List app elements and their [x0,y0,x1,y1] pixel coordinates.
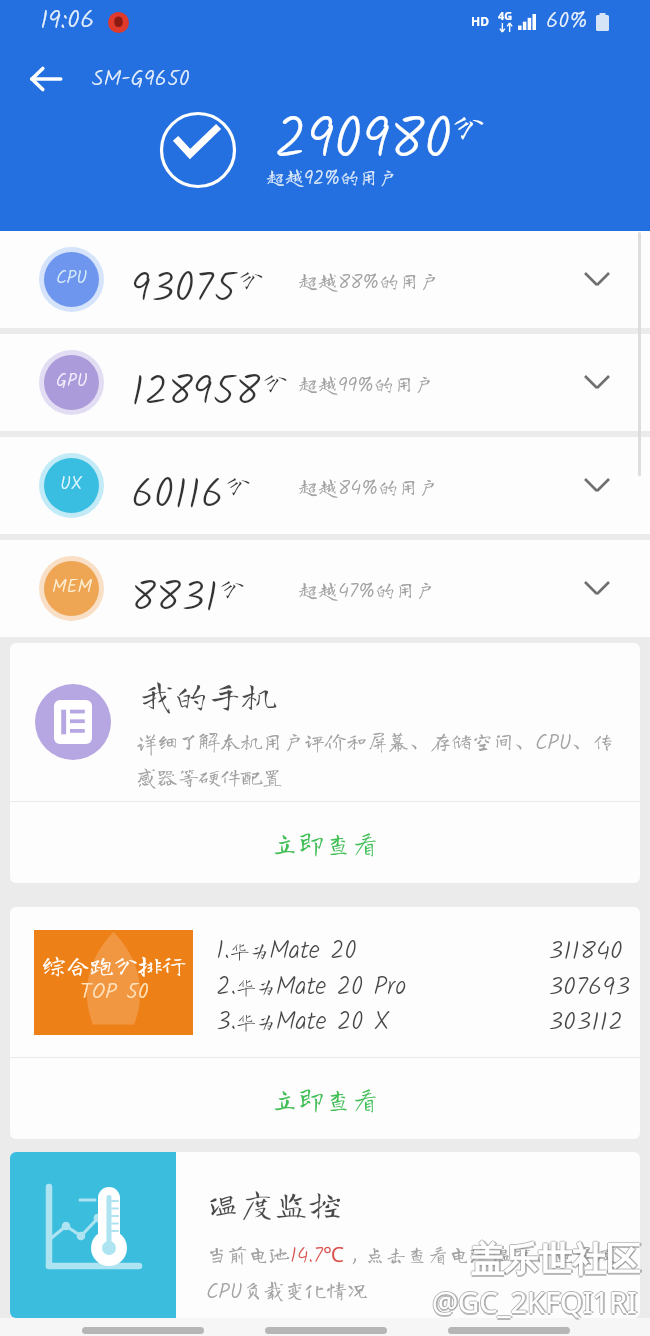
staticText: 3.华为Mate 20 X [216,1002,390,1042]
staticText: MEM [52,573,92,602]
staticText: 超越88%的用户 [298,267,440,299]
staticText: 超越92%的用户 [266,164,397,194]
staticText: 详细了解本机用户评价和屏幕、存储空间、CPU、传感器等硬件配置 [136,727,628,787]
staticText: 290980 [274,96,453,187]
button[interactable]: 温度监控 [10,1152,640,1318]
staticText: 盖乐世社区 [469,1238,639,1281]
staticText: 立即查看 [271,829,379,856]
staticText: TOP 50 [80,975,149,1010]
staticText: 128958 [131,360,261,425]
staticText: 温度监控 [206,1186,342,1220]
staticText: 19:06 [40,0,95,41]
staticText: 311840 [548,931,623,972]
staticText: UX [60,470,83,499]
button[interactable]: Back [20,53,72,105]
staticText: 分 [220,576,246,601]
staticText: 盖乐世社区 [470,1240,640,1283]
button[interactable] [265,1327,387,1334]
staticText: 分 [226,473,252,498]
staticText: 超越99%的用户 [298,370,434,402]
staticText: @GC_2KFQI1RI [432,1282,637,1321]
staticText: 我的手机 [140,678,276,712]
button[interactable] [448,1327,570,1334]
staticText: HD [471,13,489,29]
button[interactable]: 立即查看 [10,1058,640,1139]
staticText: 93075 [131,257,237,322]
staticText: GPU [56,367,88,396]
staticText: 1.华为Mate 20 [216,931,357,971]
button[interactable]: CPU [0,231,650,328]
staticText: @GC_2KFQI1RI [432,1281,637,1320]
staticText: 盖乐世社区 [470,1238,640,1281]
staticText: 超越47%的用户 [298,576,435,608]
staticText: 当前电池14.7℃，点击查看电池温度、电量及CPU负载变化情况 [206,1240,636,1309]
button[interactable]: MEM [0,540,650,637]
staticText: 综合跑分排行 [42,953,186,977]
button[interactable]: UX [0,437,650,534]
staticText: 60116 [131,463,224,528]
button[interactable]: 我的手机 [10,643,640,801]
staticText: 分 [263,370,289,395]
staticText: 8831 [131,566,218,631]
staticText: @GC_2KFQI1RI [432,1284,637,1323]
staticText: 盖乐世社区 [472,1238,642,1281]
staticText: 60% [546,4,588,39]
button[interactable]: GPU [0,334,650,431]
staticText: 4G [498,8,513,23]
staticText: 307693 [548,967,631,1008]
staticText: CPU [56,264,88,293]
staticText: 超越84%的用户 [298,473,438,505]
staticText: 303112 [548,1002,623,1043]
staticText: 分 [239,267,265,292]
staticText: 2.华为Mate 20 Pro [216,967,407,1007]
staticText: SM-G9650 [92,62,190,97]
staticText: 盖乐世社区 [470,1237,640,1280]
staticText: 分 [453,110,486,142]
staticText: 立即查看 [271,1085,379,1112]
button[interactable]: 综合跑分排行 [10,907,640,1057]
button[interactable] [82,1327,204,1334]
staticText: @GC_2KFQI1RI [431,1282,636,1321]
staticText: @GC_2KFQI1RI [434,1282,639,1321]
button[interactable]: 立即查看 [10,802,640,883]
